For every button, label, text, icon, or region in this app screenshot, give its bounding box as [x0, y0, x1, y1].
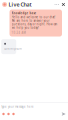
- button[interactable]: Close: [60, 1, 67, 8]
- button[interactable]: Emoji: [1, 111, 6, 116]
- staticText: Live Chat: [8, 1, 31, 8]
- button[interactable]: Add image: [11, 111, 16, 116]
- button[interactable]: Attach file: [6, 111, 11, 116]
- button[interactable]: More options: [53, 1, 60, 8]
- staticText: Knowledge base: [11, 11, 36, 15]
- staticText: Lorem ipsum: [4, 47, 21, 50]
- button[interactable]: Send: [61, 112, 66, 116]
- button[interactable]: Lorem ipsum: [1, 39, 16, 54]
- staticText: Hello and welcome to our chat! We are he…: [11, 15, 57, 30]
- staticText: 10:24 AM: [11, 31, 25, 34]
- staticText: Type your message here: [1, 105, 34, 108]
